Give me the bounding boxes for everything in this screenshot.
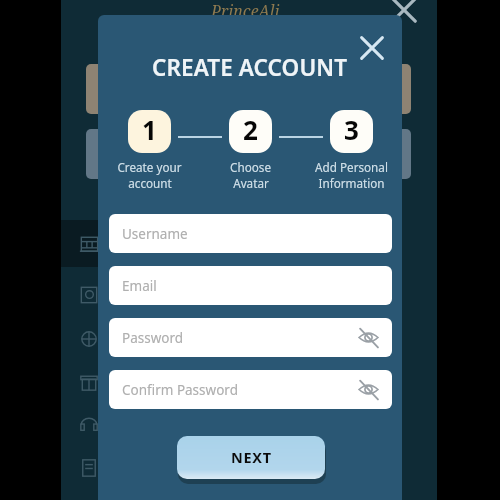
staticText: Add Personal <box>315 159 388 175</box>
staticText: Password <box>122 329 184 347</box>
button[interactable]: Show password <box>358 379 379 400</box>
staticText: 2 <box>243 112 258 147</box>
staticText: Avatar <box>233 175 269 191</box>
button[interactable]: Bonuses <box>77 370 101 394</box>
button[interactable]: PrinceAli <box>209 0 281 16</box>
button[interactable]: Close <box>391 0 417 23</box>
button[interactable]: Email <box>109 266 392 305</box>
button[interactable]: Slots <box>61 220 121 267</box>
staticText: Information <box>318 175 385 191</box>
staticText: PrinceAli <box>211 0 280 16</box>
button[interactable]: 1 <box>99 110 199 191</box>
staticText: 1 <box>142 112 157 147</box>
staticText: 3 <box>344 112 359 147</box>
staticText: Choose <box>230 159 271 175</box>
button[interactable]: Poker <box>77 327 101 351</box>
button[interactable]: Live Casino <box>77 283 101 307</box>
button[interactable]: Password <box>109 318 392 357</box>
button[interactable]: Docs <box>77 456 101 480</box>
button[interactable]: Support <box>77 413 101 437</box>
button[interactable]: NEXT <box>177 436 325 479</box>
button[interactable]: Confirm Password <box>109 370 392 409</box>
staticText: Username <box>122 225 188 243</box>
staticText: Create your <box>117 159 182 175</box>
staticText: CREATE ACCOUNT <box>152 52 348 80</box>
staticText: account <box>128 175 172 191</box>
staticText: NEXT <box>231 447 272 467</box>
button[interactable]: Close dialog <box>360 36 384 60</box>
button[interactable]: Show password <box>358 327 379 348</box>
button[interactable]: Username <box>109 214 392 253</box>
staticText: Confirm Password <box>122 381 238 399</box>
staticText: Email <box>122 277 157 295</box>
button[interactable]: Slots <box>77 232 101 256</box>
button[interactable]: 3 <box>301 110 401 191</box>
button[interactable]: 2 <box>200 110 300 191</box>
